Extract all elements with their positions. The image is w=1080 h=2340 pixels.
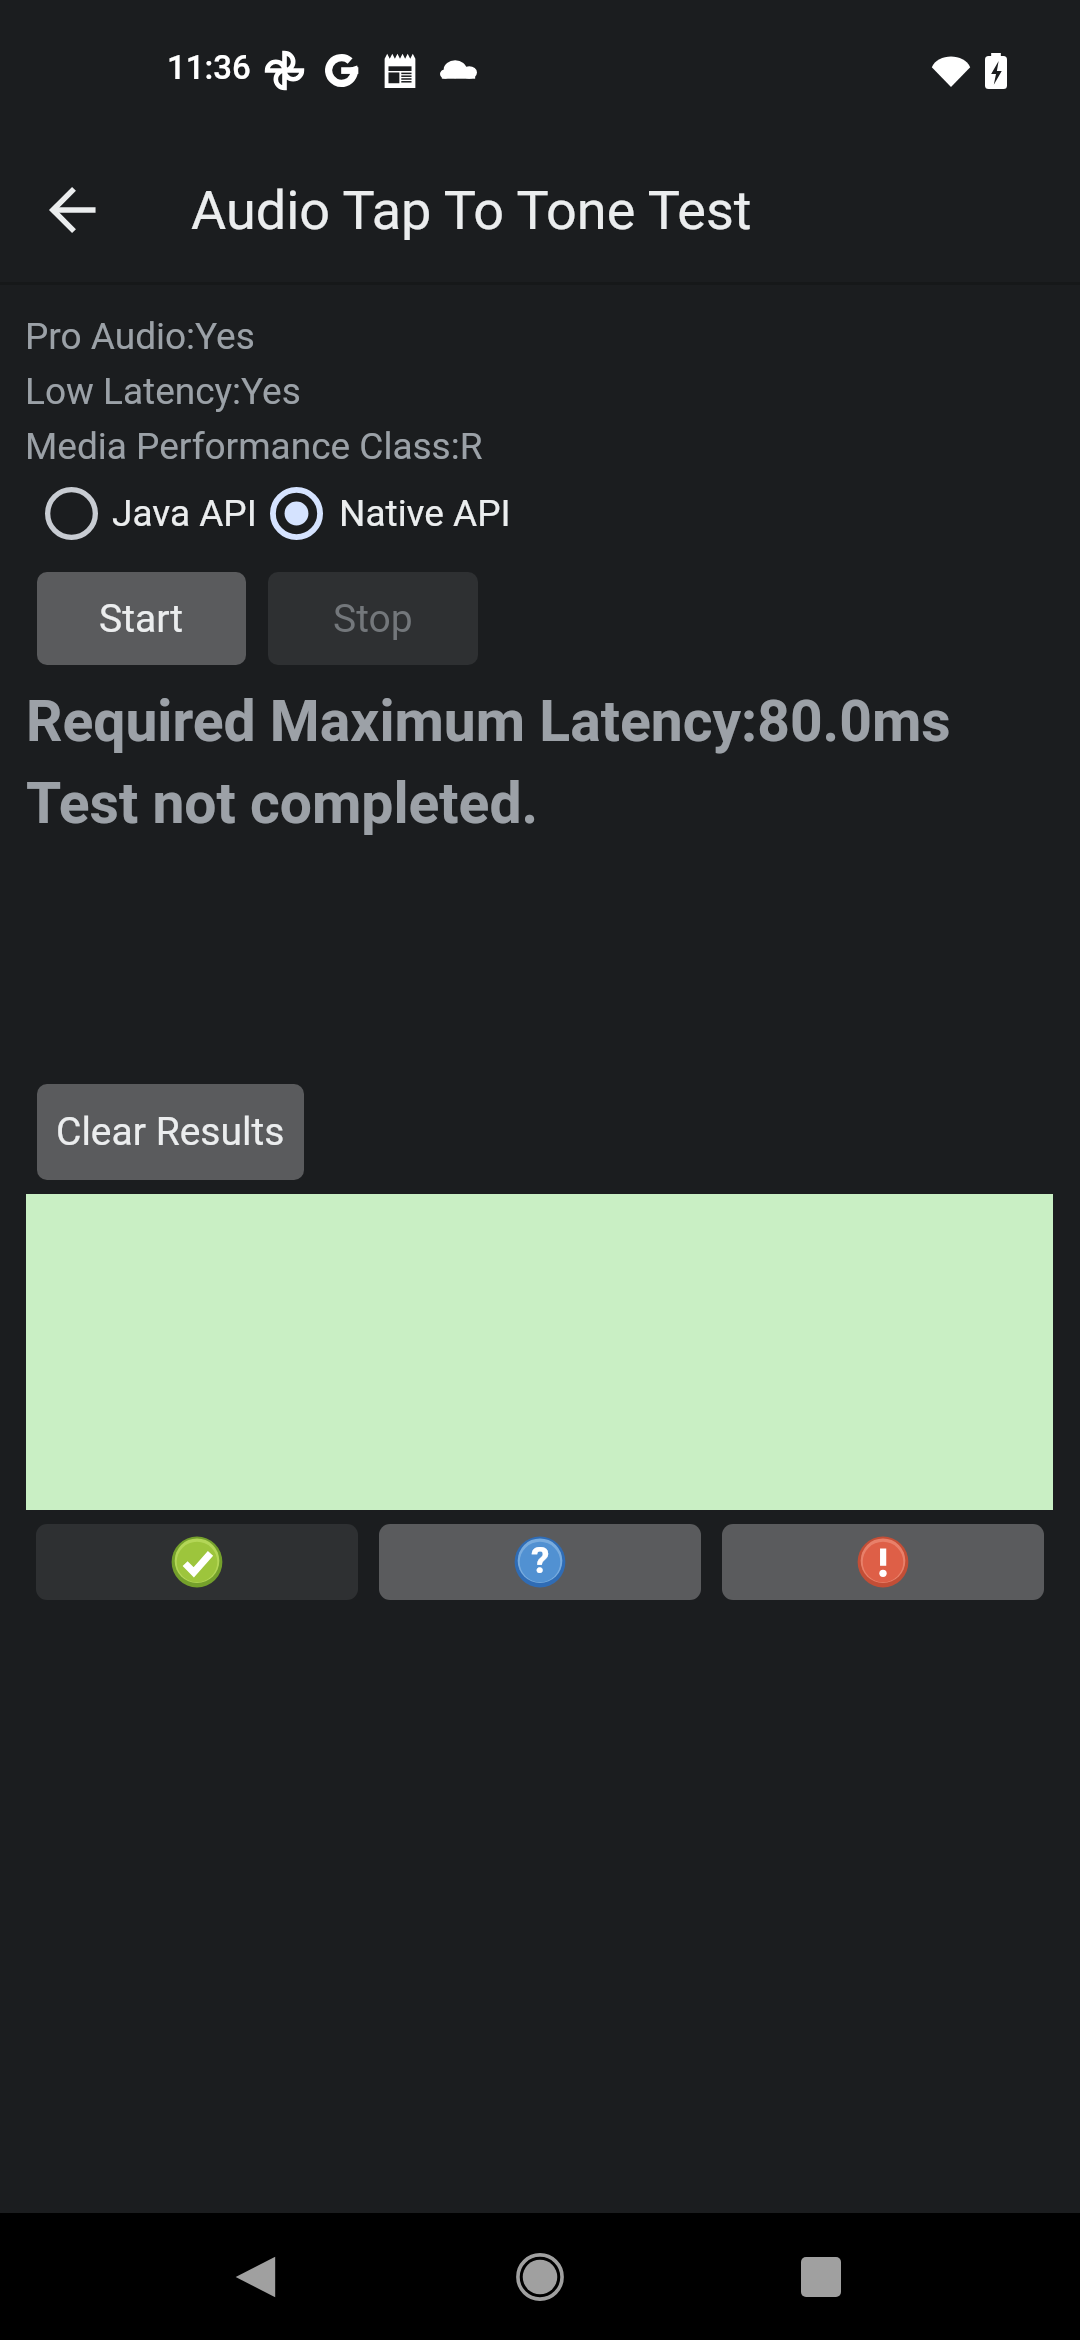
button[interactable]: Java API (45, 483, 257, 544)
button[interactable]: Info (379, 1524, 701, 1600)
staticText: Low Latency:Yes (25, 370, 301, 425)
button[interactable]: Back (195, 2217, 315, 2337)
button[interactable]: Native API (270, 483, 511, 544)
button[interactable]: Navigate up (26, 162, 122, 258)
button[interactable]: Home (480, 2217, 600, 2337)
button[interactable]: Recent apps (761, 2217, 881, 2337)
staticText: ? (531, 1539, 550, 1582)
staticText: Pro Audio:Yes (25, 315, 255, 370)
staticText: Stop (333, 596, 413, 642)
staticText: Native API (339, 492, 511, 535)
button[interactable]: Stop (268, 572, 478, 665)
button[interactable]: Start (37, 572, 246, 665)
staticText: 11:36 (167, 48, 251, 87)
staticText: Java API (112, 492, 257, 535)
staticText: Clear Results (56, 1109, 285, 1155)
staticText: Start (99, 596, 184, 642)
staticText: Required Maximum Latency:80.0ms (26, 688, 951, 770)
staticText: Test not completed. (26, 770, 539, 852)
staticText: Audio Tap To Tone Test (191, 179, 752, 242)
button[interactable]: Clear Results (37, 1084, 304, 1180)
button[interactable]: Fail (722, 1524, 1044, 1600)
staticText: Media Performance Class:R (25, 425, 483, 480)
button[interactable]: Pass (36, 1524, 358, 1600)
